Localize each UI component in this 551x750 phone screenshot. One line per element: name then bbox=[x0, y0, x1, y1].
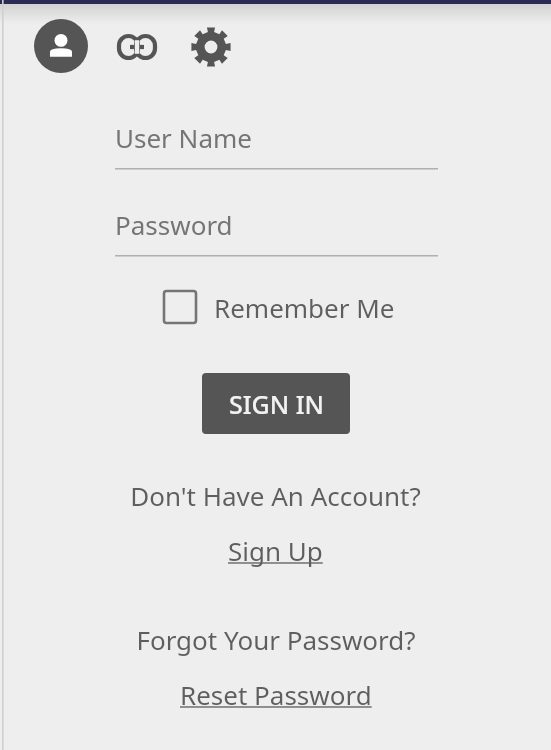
button[interactable]: Link bbox=[113, 23, 161, 71]
staticText: User Name bbox=[115, 120, 252, 155]
staticText: Remember Me bbox=[214, 290, 395, 325]
staticText: SIGN IN bbox=[229, 387, 324, 421]
button[interactable]: Sign Up bbox=[228, 533, 323, 568]
staticText: Forgot Your Password? bbox=[136, 622, 416, 657]
button[interactable]: Account bbox=[34, 19, 88, 73]
button[interactable]: Remember Me bbox=[160, 285, 395, 329]
button[interactable]: Password bbox=[115, 207, 438, 257]
staticText: Password bbox=[115, 207, 233, 242]
button[interactable]: Reset Password bbox=[180, 677, 372, 712]
button[interactable]: User Name bbox=[115, 120, 438, 170]
staticText: Reset Password bbox=[180, 677, 372, 712]
button[interactable]: SIGN IN bbox=[202, 373, 350, 434]
button[interactable]: Settings bbox=[187, 23, 235, 71]
staticText: Don't Have An Account? bbox=[130, 478, 421, 513]
staticText: Sign Up bbox=[228, 533, 323, 568]
